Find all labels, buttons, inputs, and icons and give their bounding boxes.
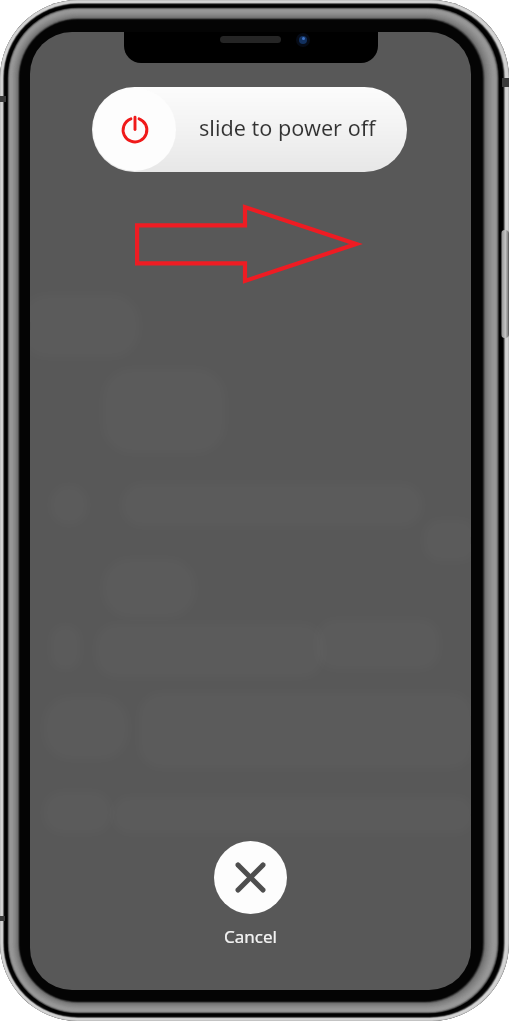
staticText: slide to power off — [199, 113, 376, 142]
staticText: Cancel — [224, 925, 277, 948]
button[interactable]: Cancel — [214, 841, 287, 914]
button[interactable]: slide to power off — [92, 87, 407, 172]
